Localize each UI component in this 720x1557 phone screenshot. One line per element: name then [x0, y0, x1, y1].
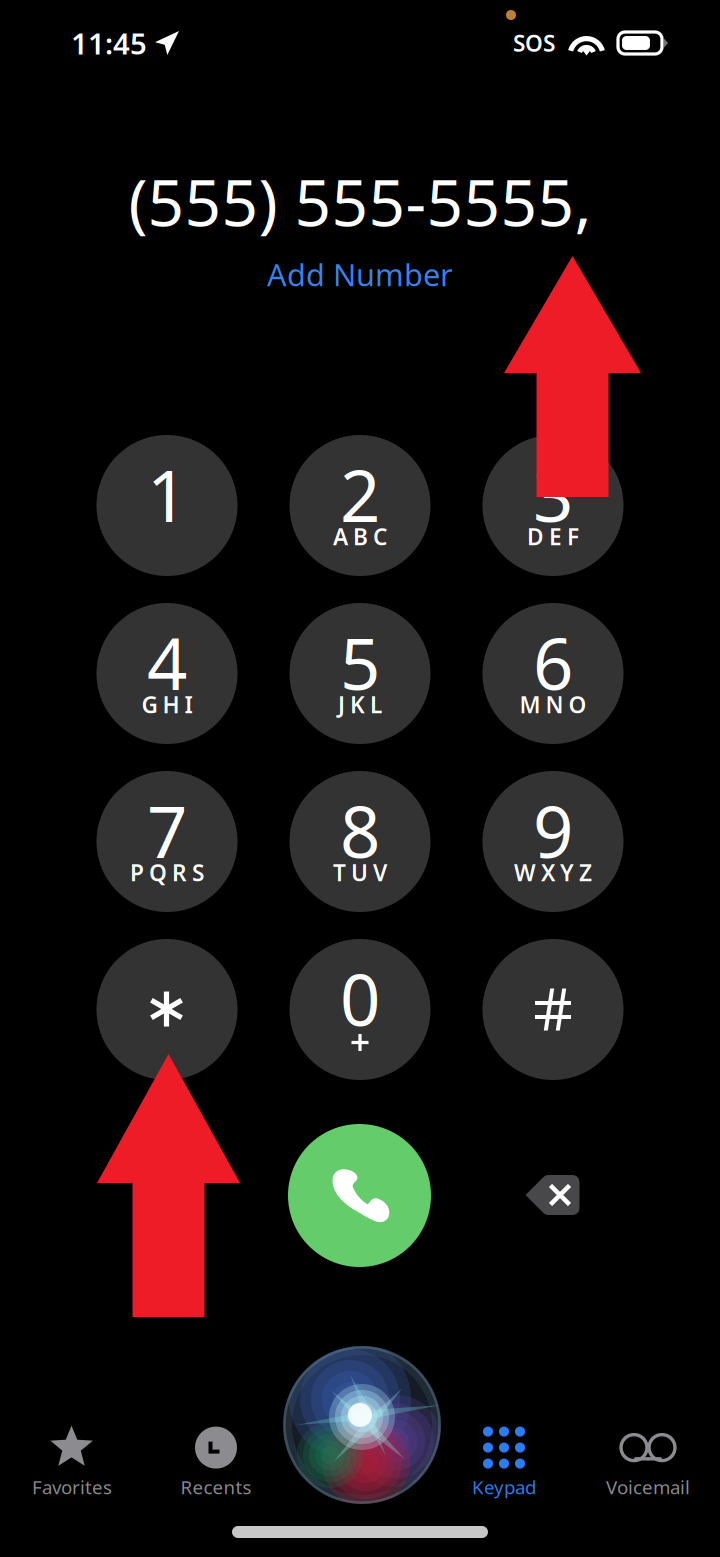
staticText: S [192, 857, 204, 887]
button[interactable] [96, 939, 237, 1080]
button[interactable]: 2 [289, 435, 430, 576]
staticText: Favorites [32, 1475, 112, 1499]
button[interactable]: Recents [144, 1416, 288, 1506]
staticText: P [130, 857, 144, 887]
staticText: 7 [147, 784, 187, 877]
staticText: A [333, 521, 348, 551]
staticText: T [333, 857, 346, 887]
staticText: L [370, 689, 382, 719]
staticText: C [373, 521, 387, 551]
staticText: Voicemail [606, 1475, 690, 1499]
staticText: K [350, 689, 365, 719]
staticText: W [514, 857, 536, 887]
button[interactable]: 0 [289, 939, 430, 1080]
button[interactable]: Voicemail [576, 1416, 720, 1506]
staticText: 4 [147, 616, 187, 709]
button[interactable]: 1 [96, 435, 237, 576]
staticText: D [527, 521, 544, 551]
button[interactable] [482, 939, 623, 1080]
staticText: Z [579, 857, 592, 887]
button[interactable]: 8 [289, 771, 430, 912]
button[interactable]: Favorites [0, 1416, 144, 1506]
staticText: Keypad [472, 1475, 536, 1499]
staticText: 2 [340, 448, 380, 541]
staticText: Y [560, 857, 574, 887]
staticText: X [541, 857, 555, 887]
staticText: B [353, 521, 368, 551]
staticText: F [567, 521, 579, 551]
staticText: 11:45 [71, 23, 147, 62]
staticText: 1 [147, 448, 187, 541]
staticText: O [568, 689, 586, 719]
button[interactable]: 9 [482, 771, 623, 912]
staticText: Recents [180, 1475, 251, 1499]
button[interactable]: 4 [96, 603, 237, 744]
staticText: V [373, 857, 387, 887]
staticText: 0 [340, 952, 380, 1045]
staticText: I [184, 689, 192, 719]
staticText: Q [149, 857, 167, 887]
staticText: SOS [513, 28, 555, 58]
button[interactable]: 6 [482, 603, 623, 744]
staticText: 6 [533, 616, 573, 709]
staticText: Contacts [321, 1475, 398, 1499]
staticText: 5 [340, 616, 380, 709]
staticText: E [549, 521, 562, 551]
staticText: H [162, 689, 179, 719]
staticText: M [519, 689, 540, 719]
button[interactable]: 3 [482, 435, 623, 576]
staticText: (555) 555-5555, [128, 159, 591, 244]
button[interactable]: 7 [96, 771, 237, 912]
staticText: U [351, 857, 368, 887]
staticText: Add Number [267, 254, 453, 295]
staticText: G [141, 689, 157, 719]
button[interactable]: Call [288, 1124, 431, 1267]
staticText: 8 [340, 784, 380, 877]
button[interactable]: Contacts [288, 1416, 432, 1506]
button[interactable]: Add Number [253, 248, 467, 301]
button[interactable]: 5 [289, 603, 430, 744]
staticText: R [172, 857, 187, 887]
staticText: 9 [533, 784, 573, 877]
button[interactable]: Keypad [432, 1416, 576, 1506]
staticText: 3 [533, 448, 573, 541]
button[interactable]: Delete [492, 1147, 612, 1243]
staticText: N [545, 689, 563, 719]
staticText: J [338, 689, 345, 719]
